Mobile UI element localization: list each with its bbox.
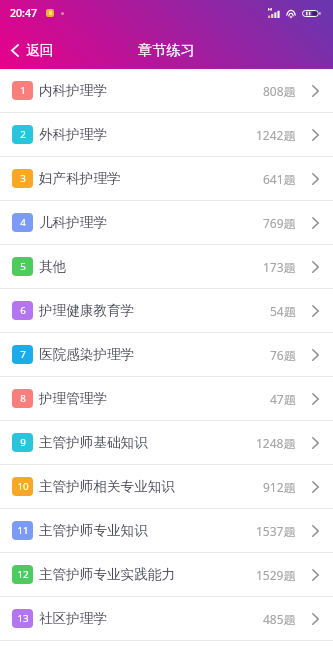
button[interactable]: 8 [0, 377, 333, 421]
button[interactable]: 9 [0, 421, 333, 465]
staticText: 5 [20, 260, 26, 273]
staticText: 主管护师专业知识 [39, 522, 148, 539]
button[interactable]: 3 [0, 157, 333, 201]
staticText: 12 [17, 568, 29, 581]
button[interactable]: 1 [0, 69, 333, 113]
staticText: 内科护理学 [39, 82, 107, 99]
button[interactable]: 11 [0, 509, 333, 553]
other: Open [312, 305, 319, 317]
other: Signal [268, 8, 280, 18]
button[interactable]: 13 [0, 597, 333, 641]
staticText: 173题 [263, 259, 296, 275]
button[interactable]: 5 [0, 245, 333, 289]
staticText: 医院感染护理学 [39, 346, 135, 363]
staticText: 641题 [263, 171, 296, 187]
staticText: 769题 [263, 215, 296, 231]
staticText: 47题 [270, 391, 296, 407]
staticText: 1248题 [256, 435, 296, 451]
other: Wi-Fi [286, 9, 296, 18]
staticText: 485题 [263, 611, 296, 627]
staticText: 1 [20, 84, 26, 97]
other: Open [312, 437, 319, 449]
staticText: 10 [17, 480, 29, 493]
staticText: 儿科护理学 [39, 214, 107, 231]
other: Open [312, 525, 319, 537]
button[interactable]: 返回 [0, 36, 66, 65]
staticText: 返回 [26, 42, 54, 59]
other: Battery [302, 10, 320, 17]
button[interactable]: 10 [0, 465, 333, 509]
button[interactable]: 2 [0, 113, 333, 157]
staticText: 其他 [39, 258, 67, 275]
other: Open [312, 217, 319, 229]
button[interactable]: 12 [0, 553, 333, 597]
staticText: 4 [20, 216, 26, 229]
staticText: 主管护师基础知识 [39, 434, 148, 451]
other: Open [312, 129, 319, 141]
other: Open [312, 393, 319, 405]
other: Open [312, 85, 319, 97]
staticText: 章节练习 [138, 41, 195, 59]
staticText: 13 [17, 612, 29, 625]
button[interactable]: 7 [0, 333, 333, 377]
staticText: 7 [20, 348, 26, 361]
staticText: 20:47 [10, 6, 38, 20]
other: Open [312, 569, 319, 581]
staticText: 1242题 [256, 127, 296, 143]
staticText: 8 [20, 392, 26, 405]
staticText: 11 [17, 524, 29, 537]
staticText: 9 [20, 436, 26, 449]
staticText: 妇产科护理学 [39, 170, 121, 187]
staticText: 主管护师专业实践能力 [39, 566, 175, 583]
staticText: 护理健康教育学 [39, 302, 135, 319]
staticText: 护理管理学 [39, 390, 107, 407]
staticText: 外科护理学 [39, 126, 107, 143]
button[interactable]: 6 [0, 289, 333, 333]
other: Open [312, 481, 319, 493]
other: Open [312, 613, 319, 625]
other: Open [312, 261, 319, 273]
staticText: 社区护理学 [39, 610, 107, 627]
staticText: 76题 [270, 347, 296, 363]
staticText: 6 [20, 304, 26, 317]
staticText: 主管护师相关专业知识 [39, 478, 175, 495]
button[interactable]: 4 [0, 201, 333, 245]
staticText: 1529题 [256, 567, 296, 583]
staticText: 3 [20, 172, 26, 185]
other: Open [312, 173, 319, 185]
staticText: 808题 [263, 83, 296, 99]
staticText: 54题 [270, 303, 296, 319]
staticText: 912题 [263, 479, 296, 495]
other: Open [312, 349, 319, 361]
staticText: 1537题 [256, 523, 296, 539]
staticText: 2 [20, 128, 26, 141]
